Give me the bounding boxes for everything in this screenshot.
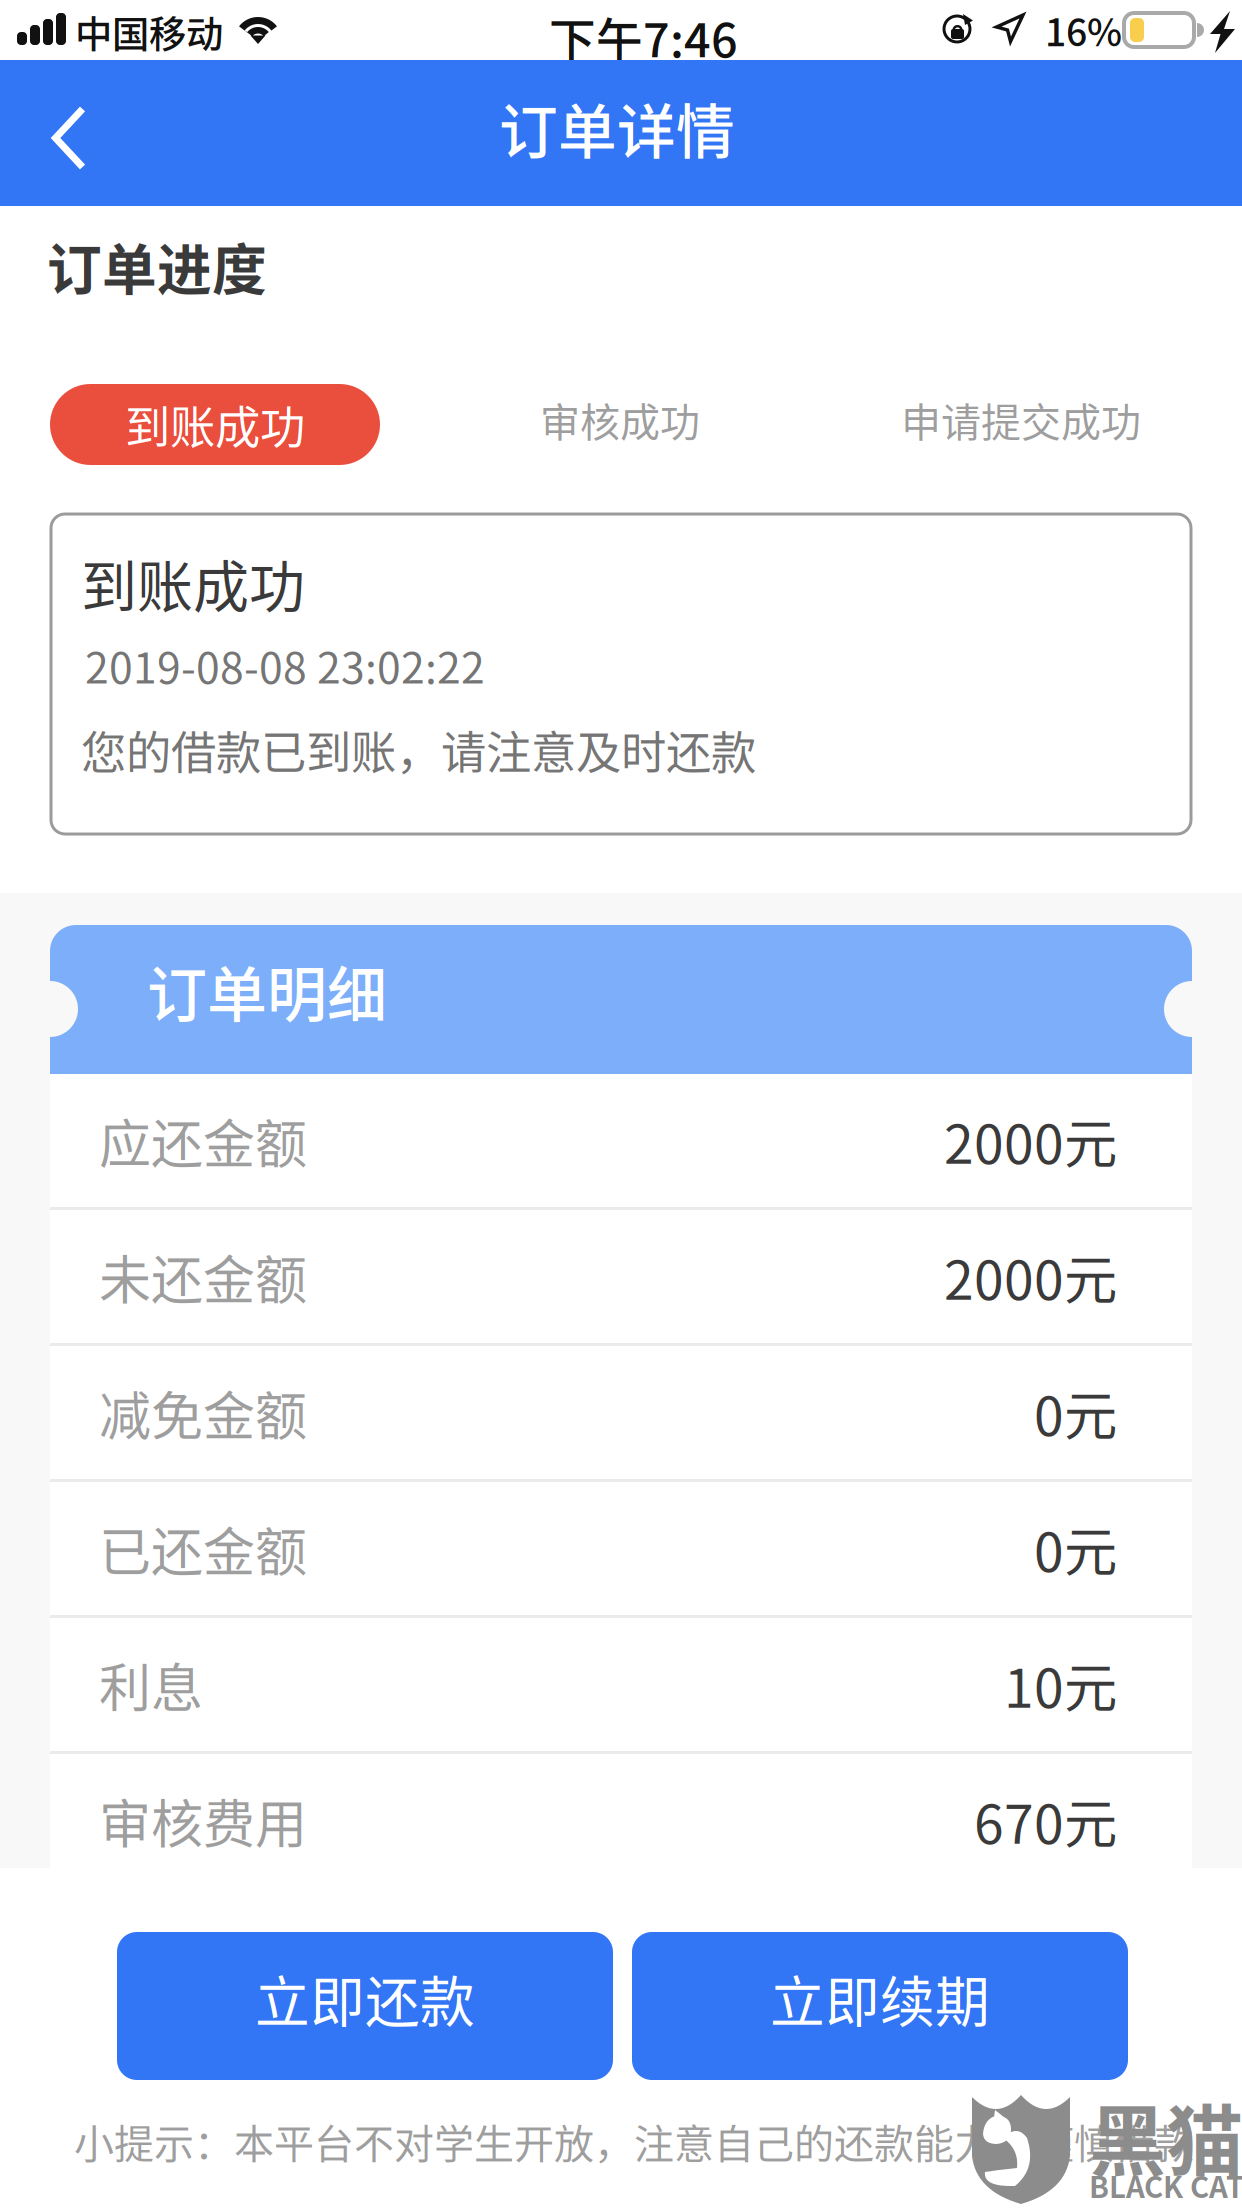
staticText: 立即还款 xyxy=(255,1958,475,2038)
staticText: 到账成功 xyxy=(125,392,305,457)
button[interactable]: 审核成功 xyxy=(500,379,740,460)
staticText: 利息 xyxy=(99,1647,203,1722)
button[interactable]: 立即还款 xyxy=(117,1932,613,2080)
staticText: 到账成功 xyxy=(81,542,305,623)
staticText: 订单进度 xyxy=(47,226,267,305)
button[interactable]: 返回 xyxy=(0,60,136,206)
staticText: 未还金额 xyxy=(99,1239,307,1314)
staticText: 2000元 xyxy=(944,1238,1117,1315)
staticText: 0元 xyxy=(1034,1510,1117,1587)
staticText: 审核成功 xyxy=(540,390,700,448)
staticText: 2000元 xyxy=(944,1102,1117,1179)
staticText: 应还金额 xyxy=(99,1103,307,1178)
button[interactable]: 申请提交成功 xyxy=(871,379,1171,460)
staticText: 订单明细 xyxy=(147,947,387,1034)
staticText: 立即续期 xyxy=(770,1958,990,2038)
staticText: 2019-08-08 23:02:22 xyxy=(85,634,485,696)
staticText: 订单详情 xyxy=(499,85,735,170)
staticText: 黑猫 xyxy=(1089,2080,1242,2192)
staticText: 16% xyxy=(1045,3,1122,57)
staticText: BLACK CAT xyxy=(1089,2164,1242,2206)
staticText: 减免金额 xyxy=(99,1375,307,1450)
staticText: 中国移动 xyxy=(75,5,223,59)
staticText: 小提示：本平台不对学生开放，注意自己的还款能力，谨慎借款 xyxy=(74,2112,1194,2170)
staticText: 申请提交成功 xyxy=(901,390,1141,448)
staticText: 10元 xyxy=(1004,1646,1117,1723)
staticText: 您的借款已到账，请注意及时还款 xyxy=(81,717,756,783)
staticText: 审核费用 xyxy=(99,1783,307,1858)
staticText: 下午7:46 xyxy=(549,3,738,71)
staticText: 670元 xyxy=(974,1782,1117,1859)
button[interactable]: 立即续期 xyxy=(632,1932,1128,2080)
staticText: 0元 xyxy=(1034,1374,1117,1451)
staticText: 已还金额 xyxy=(99,1511,307,1586)
button[interactable]: 到账成功 xyxy=(50,384,380,465)
